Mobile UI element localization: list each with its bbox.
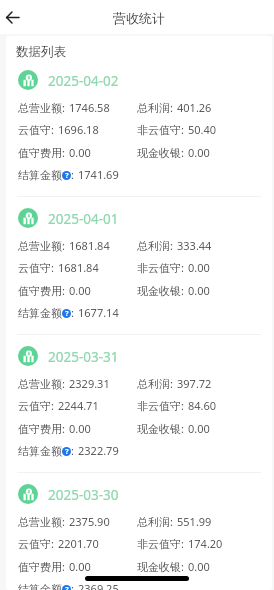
staticText: 总营业额	[18, 101, 62, 115]
staticText: :	[71, 305, 74, 320]
staticText: 值守费用	[18, 560, 62, 574]
staticText: 1677.14	[78, 305, 119, 320]
staticText: 总营业额	[18, 377, 62, 391]
staticText: :	[62, 559, 65, 574]
staticText: 现金收银	[137, 146, 181, 160]
staticText: 0.00	[188, 260, 210, 275]
staticText: :	[181, 421, 184, 436]
button[interactable]: 2025-03-31	[6, 346, 272, 484]
staticText: 总营业额	[18, 515, 62, 529]
button[interactable]: 2025-04-02	[6, 70, 272, 208]
staticText: :	[51, 536, 54, 551]
staticText: :	[51, 122, 54, 137]
staticText: 50.40	[188, 122, 217, 137]
staticText: 0.00	[69, 559, 91, 574]
staticText: 2025-03-31	[48, 348, 119, 366]
staticText: :	[62, 100, 65, 115]
staticText: 现金收银	[137, 422, 181, 436]
staticText: 2369.25	[78, 581, 119, 590]
staticText: 2025-03-30	[48, 486, 119, 504]
staticText: 0.00	[69, 283, 91, 298]
staticText: :	[51, 260, 54, 275]
staticText: :	[62, 514, 65, 529]
staticText: :	[62, 283, 65, 298]
staticText: 结算金额	[18, 582, 62, 590]
staticText: 云值守	[18, 123, 51, 137]
staticText: 2025-04-01	[48, 210, 119, 228]
staticText: :	[181, 283, 184, 298]
staticText: 非云值守	[137, 123, 181, 137]
staticText: 总利润	[137, 239, 170, 253]
staticText: 0.00	[188, 421, 210, 436]
staticText: 0.00	[188, 145, 210, 160]
staticText: 云值守	[18, 261, 51, 275]
staticText: 营收统计	[113, 10, 165, 26]
staticText: 云值守	[18, 537, 51, 551]
staticText: 1681.84	[58, 260, 99, 275]
staticText: :	[71, 581, 74, 590]
staticText: 174.20	[188, 536, 223, 551]
staticText: 总利润	[137, 101, 170, 115]
staticText: :	[181, 559, 184, 574]
staticText: :	[170, 100, 173, 115]
staticText: 非云值守	[137, 537, 181, 551]
button[interactable]: 2025-04-01	[6, 208, 272, 346]
staticText: 84.60	[188, 398, 217, 413]
staticText: 2244.71	[58, 398, 99, 413]
staticText: 1696.18	[58, 122, 99, 137]
staticText: ?	[65, 447, 69, 456]
staticText: 2329.31	[69, 376, 110, 391]
staticText: 总利润	[137, 515, 170, 529]
staticText: 结算金额	[18, 306, 62, 320]
staticText: 现金收银	[137, 284, 181, 298]
button[interactable]: Back	[1, 6, 23, 28]
staticText: ?	[65, 585, 69, 590]
staticText: :	[62, 421, 65, 436]
staticText: 333.44	[177, 238, 212, 253]
staticText: 总营业额	[18, 239, 62, 253]
staticText: ?	[65, 171, 69, 180]
staticText: 结算金额	[18, 444, 62, 458]
staticText: 值守费用	[18, 422, 62, 436]
staticText: 2375.90	[69, 514, 110, 529]
staticText: 值守费用	[18, 284, 62, 298]
staticText: 551.99	[177, 514, 212, 529]
staticText: 数据列表	[16, 44, 66, 60]
staticText: 云值守	[18, 399, 51, 413]
staticText: 0.00	[188, 283, 210, 298]
staticText: :	[62, 145, 65, 160]
staticText: :	[170, 376, 173, 391]
staticText: 2025-04-02	[48, 72, 119, 90]
staticText: 401.26	[177, 100, 212, 115]
staticText: 397.72	[177, 376, 212, 391]
staticText: :	[170, 514, 173, 529]
staticText: 2201.70	[58, 536, 99, 551]
staticText: 0.00	[69, 145, 91, 160]
button[interactable]: 2025-03-30	[6, 484, 272, 590]
staticText: 值守费用	[18, 146, 62, 160]
staticText: 1741.69	[78, 167, 119, 182]
staticText: 现金收银	[137, 560, 181, 574]
staticText: 非云值守	[137, 261, 181, 275]
staticText: 1681.84	[69, 238, 110, 253]
staticText: :	[181, 536, 184, 551]
staticText: :	[71, 443, 74, 458]
staticText: 0.00	[188, 559, 210, 574]
staticText: :	[181, 260, 184, 275]
staticText: :	[62, 238, 65, 253]
staticText: :	[170, 238, 173, 253]
staticText: 总利润	[137, 377, 170, 391]
staticText: ?	[65, 309, 69, 318]
staticText: 0.00	[69, 421, 91, 436]
staticText: :	[71, 167, 74, 182]
staticText: 1746.58	[69, 100, 110, 115]
staticText: :	[181, 122, 184, 137]
staticText: 非云值守	[137, 399, 181, 413]
staticText: 2322.79	[78, 443, 119, 458]
staticText: 结算金额	[18, 168, 62, 182]
staticText: :	[51, 398, 54, 413]
staticText: :	[181, 145, 184, 160]
staticText: :	[181, 398, 184, 413]
staticText: :	[62, 376, 65, 391]
